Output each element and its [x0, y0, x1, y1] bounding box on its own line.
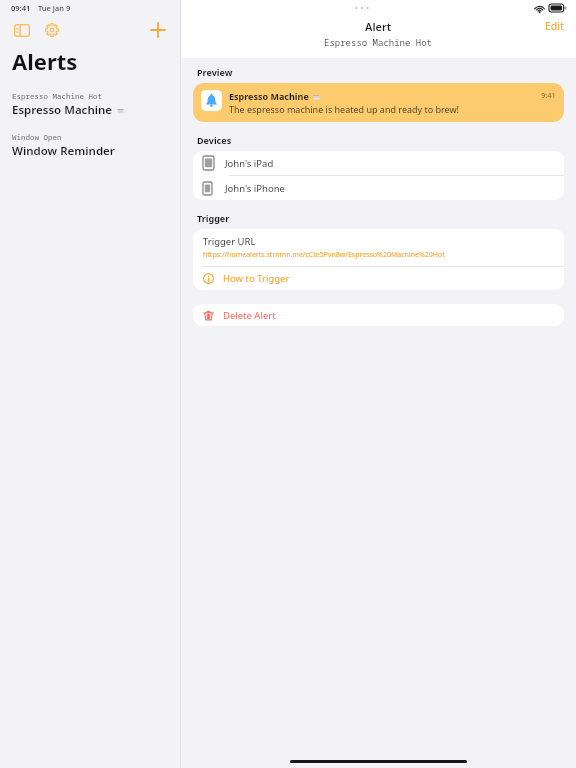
button[interactable]: Delete Alert: [193, 304, 564, 326]
staticText: Edit: [545, 19, 564, 33]
button[interactable]: Espresso Machine Hot: [0, 90, 180, 119]
button[interactable]: How to Trigger: [193, 267, 564, 290]
staticText: Espresso Machine: [12, 102, 113, 118]
staticText: Delete Alert: [223, 309, 276, 322]
button[interactable]: Edit: [533, 17, 576, 35]
staticText: 9:41: [541, 90, 556, 100]
button[interactable]: John's iPhone: [193, 176, 564, 200]
staticText: Espresso Machine Hot: [324, 36, 433, 48]
staticText: Espresso Machine Hot: [12, 91, 102, 101]
staticText: How to Trigger: [223, 272, 290, 285]
button[interactable]: Settings: [41, 19, 63, 41]
staticText: The espresso machine is heated up and re…: [229, 103, 459, 115]
staticText: Tue Jan 9: [38, 3, 71, 13]
button[interactable]: Toggle Sidebar: [11, 19, 33, 41]
staticText: Alerts: [12, 46, 78, 76]
staticText: Preview: [197, 66, 233, 78]
staticText: John's iPhone: [225, 182, 285, 195]
staticText: Devices: [197, 134, 232, 146]
staticText: Espresso Machine: [229, 90, 309, 102]
staticText: Alert: [365, 19, 392, 34]
staticText: Trigger URL: [203, 235, 256, 248]
staticText: Window Reminder: [12, 143, 115, 159]
button[interactable]: Window Open: [0, 131, 180, 160]
button[interactable]: Trigger URL: [193, 229, 564, 266]
button[interactable]: John's iPad: [193, 151, 564, 175]
staticText: Trigger: [197, 212, 230, 224]
staticText: https://homealerts.strnmn.me/cCte5Pvn8w/…: [203, 250, 445, 260]
button[interactable]: Add Alert: [147, 19, 169, 41]
staticText: Window Open: [12, 132, 62, 142]
staticText: John's iPad: [225, 157, 274, 170]
staticText: 09:41: [11, 3, 31, 13]
button[interactable]: Espresso Machine: [193, 83, 564, 122]
